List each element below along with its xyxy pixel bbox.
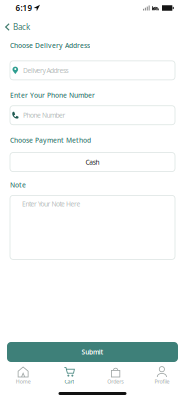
button[interactable]: Submit bbox=[7, 342, 178, 362]
staticText: Choose Payment Method bbox=[10, 136, 91, 145]
staticText: Submit bbox=[81, 348, 104, 356]
staticText: Choose Delivery Address bbox=[10, 41, 90, 50]
staticText: Note bbox=[10, 181, 26, 189]
staticText: Home bbox=[16, 378, 31, 385]
staticText: Delivery Address bbox=[23, 66, 68, 75]
staticText: Profile bbox=[154, 378, 169, 385]
button[interactable]: Orders bbox=[92, 367, 139, 385]
staticText: Enter Your Note Here bbox=[22, 199, 80, 208]
button[interactable]: Home bbox=[0, 367, 46, 385]
staticText: Back bbox=[13, 22, 30, 32]
staticText: Orders bbox=[107, 378, 124, 385]
button[interactable]: Cart bbox=[46, 367, 92, 385]
button[interactable]: Back bbox=[0, 20, 92, 34]
button[interactable]: Profile bbox=[139, 367, 185, 385]
staticText: Cash bbox=[85, 158, 99, 166]
staticText: Enter Your Phone Number bbox=[10, 91, 95, 100]
staticText: Cart bbox=[64, 378, 74, 385]
staticText: Phone Number bbox=[23, 111, 65, 120]
button[interactable]: Cash bbox=[10, 153, 175, 172]
staticText: 6:19 bbox=[15, 3, 32, 13]
